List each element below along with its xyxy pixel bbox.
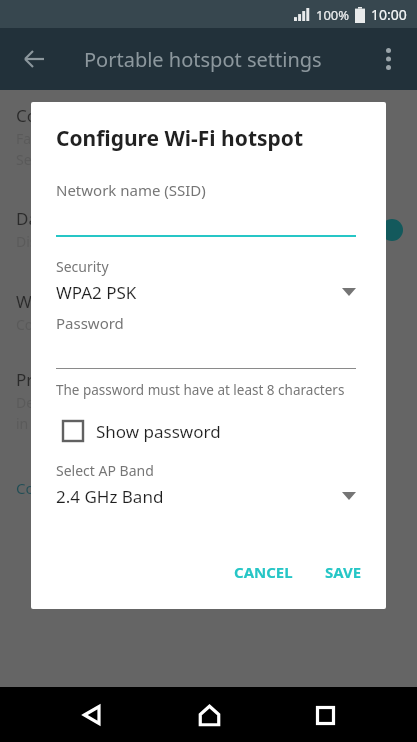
staticText: Network name (SSID) (56, 180, 206, 200)
staticText: Device will stay awake while (16, 393, 200, 412)
button[interactable]: Show password (31, 415, 386, 447)
button[interactable]: More options (367, 38, 409, 80)
button[interactable]: Back (14, 39, 54, 79)
staticText: FastHotspot (16, 129, 96, 148)
button[interactable]: SAVE (315, 555, 372, 589)
button[interactable]: Recents (301, 691, 349, 739)
staticText: in hotspot mode (16, 414, 125, 433)
staticText: Configure auto off timer (16, 315, 176, 334)
staticText: WPA2 PSK (56, 281, 137, 304)
staticText: Configure Wi-Fi hotspot (16, 104, 205, 127)
staticText: Disabled (16, 232, 74, 251)
staticText: Security (56, 257, 109, 276)
button[interactable]: CANCEL (224, 555, 303, 589)
staticText: Select AP Band (56, 461, 154, 480)
button[interactable]: Home (185, 691, 233, 739)
staticText: Secured WPA2 PSK (16, 150, 139, 169)
staticText: The password must have at least 8 charac… (56, 381, 345, 399)
staticText: Data usage limit (16, 207, 146, 230)
staticText: Configure Wi-Fi hotspot (56, 124, 304, 153)
staticText: Password (56, 313, 124, 333)
staticText: CANCEL (234, 562, 293, 582)
staticText: 10:00 (371, 5, 407, 24)
staticText: Wi-Fi hotspot auto off (16, 290, 189, 313)
staticText: Connected devices (0/8) (16, 478, 184, 498)
staticText: 2.4 GHz Band (56, 485, 164, 508)
staticText: SAVE (325, 562, 362, 582)
button[interactable]: WPA2 PSK (31, 279, 386, 305)
staticText: Portable hotspot settings (84, 46, 322, 73)
button[interactable]: Back (68, 691, 116, 739)
staticText: Show password (96, 420, 221, 443)
button[interactable]: 2.4 GHz Band (31, 483, 386, 509)
staticText: Prevent device sleep (16, 368, 179, 391)
staticText: 100% (316, 6, 350, 24)
